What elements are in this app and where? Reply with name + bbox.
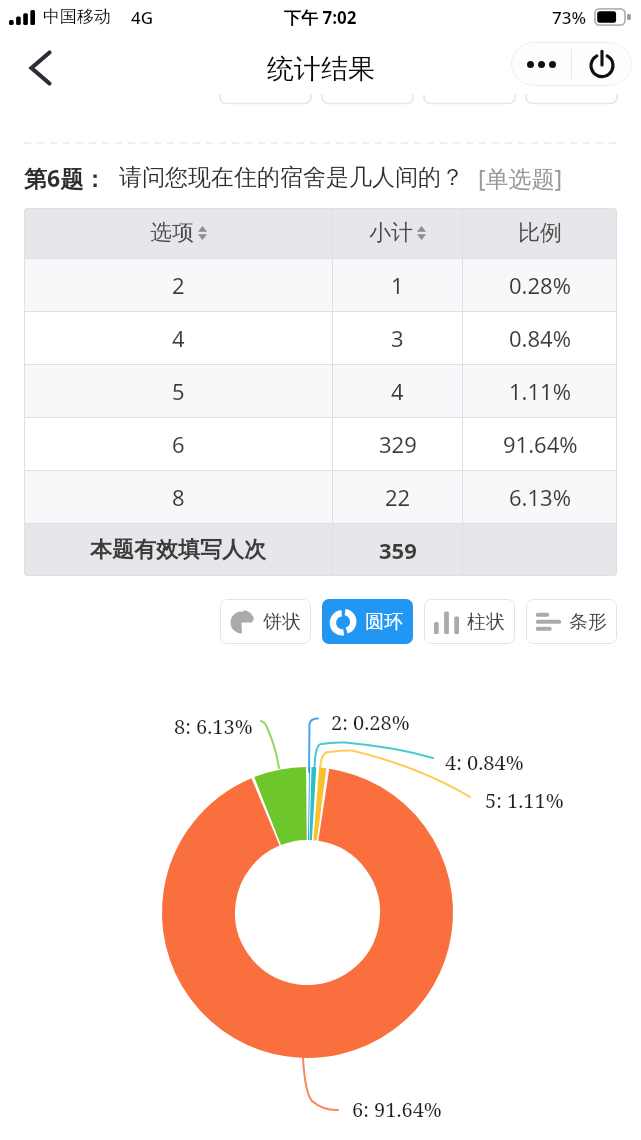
staticText: 4G bbox=[131, 6, 154, 29]
staticText: 本题有效填写人次 bbox=[90, 536, 266, 564]
staticText: 统计结果 bbox=[267, 52, 375, 86]
staticText: 0.28% bbox=[509, 270, 571, 300]
staticText: 1.11% bbox=[509, 376, 571, 406]
button[interactable]: 条形 bbox=[526, 599, 617, 644]
staticText: 第6题： bbox=[24, 162, 107, 193]
staticText: 0.84% bbox=[509, 323, 571, 353]
staticText: 5 bbox=[172, 376, 185, 406]
staticText: 73% bbox=[552, 6, 586, 29]
staticText: 22 bbox=[385, 482, 411, 512]
staticText: 3 bbox=[391, 323, 404, 353]
staticText: 6.13% bbox=[509, 482, 571, 512]
staticText: 小计 bbox=[369, 219, 413, 247]
staticText: [单选题] bbox=[478, 162, 563, 193]
staticText: 1 bbox=[391, 270, 404, 300]
staticText: 中国移动 bbox=[43, 6, 111, 27]
staticText: 条形 bbox=[569, 610, 607, 634]
staticText: 2: 0.28% bbox=[331, 709, 410, 736]
staticText: 4 bbox=[172, 323, 185, 353]
staticText: 91.64% bbox=[503, 429, 578, 459]
staticText: 4 bbox=[391, 376, 404, 406]
staticText: 6 bbox=[172, 429, 185, 459]
button[interactable]: 返回 bbox=[14, 42, 66, 94]
staticText: 请问您现在住的宿舍是几人间的？ bbox=[119, 163, 464, 192]
staticText: 329 bbox=[379, 429, 417, 459]
staticText: 4: 0.84% bbox=[445, 749, 524, 776]
staticText: 柱状 bbox=[467, 610, 505, 634]
button[interactable]: 更多 bbox=[511, 42, 571, 86]
button[interactable]: 圆环 bbox=[322, 599, 413, 644]
staticText: 饼状 bbox=[263, 610, 301, 634]
staticText: 比例 bbox=[518, 219, 562, 247]
staticText: 5: 1.11% bbox=[485, 787, 564, 814]
staticText: 圆环 bbox=[365, 610, 403, 634]
button[interactable]: 饼状 bbox=[220, 599, 311, 644]
staticText: 6: 91.64% bbox=[352, 1096, 442, 1123]
staticText: 2 bbox=[172, 270, 185, 300]
staticText: 选项 bbox=[150, 219, 194, 247]
button[interactable]: 柱状 bbox=[424, 599, 515, 644]
staticText: 8: 6.13% bbox=[174, 713, 253, 740]
staticText: 8 bbox=[172, 482, 185, 512]
staticText: 下午 7:02 bbox=[284, 6, 357, 29]
staticText: 359 bbox=[379, 535, 417, 565]
button[interactable]: 关闭 bbox=[572, 42, 632, 86]
